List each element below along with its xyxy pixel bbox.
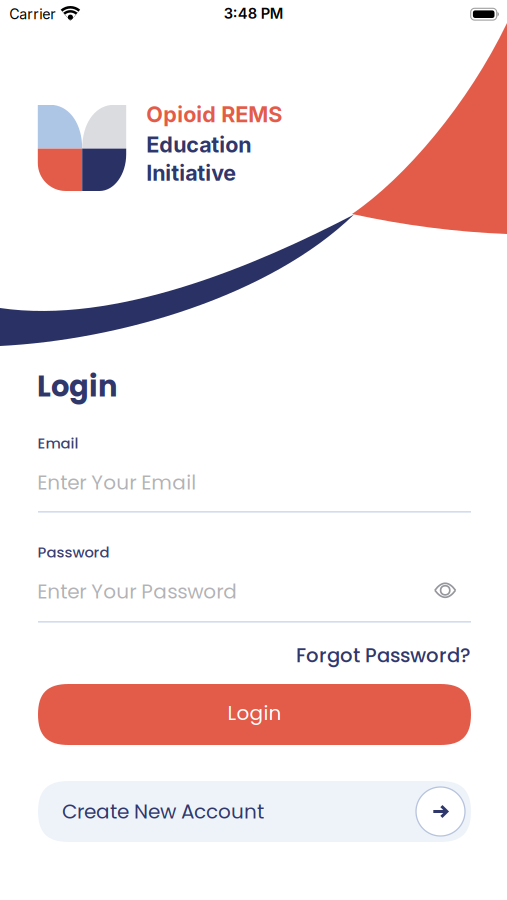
- staticText: Email: [38, 433, 79, 454]
- staticText: Create New Account: [62, 797, 264, 825]
- button[interactable]: Forgot Password?: [296, 642, 471, 669]
- staticText: Login: [227, 699, 281, 727]
- staticText: Password: [38, 542, 110, 563]
- staticText: Carrier: [9, 6, 55, 23]
- button[interactable]: Login: [38, 684, 471, 745]
- button[interactable]: Create New Account: [38, 781, 471, 842]
- staticText: Education: [146, 132, 251, 158]
- staticText: Login: [37, 366, 118, 407]
- staticText: Enter Your Email: [37, 469, 196, 497]
- staticText: Initiative: [146, 160, 236, 186]
- button[interactable]: Show Password: [434, 580, 457, 600]
- staticText: Enter Your Password: [37, 578, 237, 606]
- staticText: 3:48 PM: [224, 4, 284, 22]
- staticText: Forgot Password?: [296, 642, 471, 669]
- staticText: Opioid REMS: [146, 101, 282, 127]
